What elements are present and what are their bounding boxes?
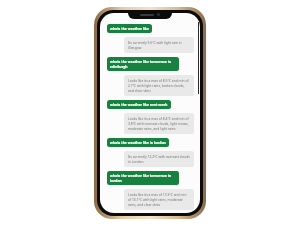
button[interactable]: whats the weather like in london — [107, 138, 169, 147]
staticText: whats the weather like in london — [110, 140, 166, 145]
button[interactable]: Looks like its a max of 8.5°C and min of… — [124, 75, 194, 96]
button[interactable]: whats the weather like tomorrow in edinb… — [107, 57, 179, 71]
staticText: Its currently 9.6°C with light rain in G… — [128, 40, 190, 50]
button[interactable]: Its currently 12.2°C with overcast cloud… — [124, 151, 194, 167]
button[interactable]: whats the weather like next week — [107, 100, 171, 109]
button[interactable]: whats the weather like — [107, 24, 152, 33]
button[interactable]: Looks like its a max of 8.4°C and min of… — [124, 113, 194, 134]
staticText: whats the weather like next week — [110, 102, 168, 107]
staticText: Looks like its a max of 8.4°C and min of… — [128, 116, 190, 131]
staticText: Looks like its a max of 13.3°C and min o… — [128, 192, 190, 207]
staticText: Its currently 12.2°C with overcast cloud… — [128, 154, 190, 164]
button[interactable]: Looks like its a max of 13.3°C and min o… — [124, 189, 194, 210]
button[interactable]: whats the weather like tomorrow in londo… — [107, 171, 179, 185]
staticText: whats the weather like tomorrow in edinb… — [110, 59, 176, 69]
button[interactable]: Its currently 9.6°C with light rain in G… — [124, 37, 194, 53]
staticText: whats the weather like tomorrow in londo… — [110, 173, 176, 183]
staticText: whats the weather like — [110, 26, 149, 31]
staticText: Looks like its a max of 8.5°C and min of… — [128, 78, 190, 93]
